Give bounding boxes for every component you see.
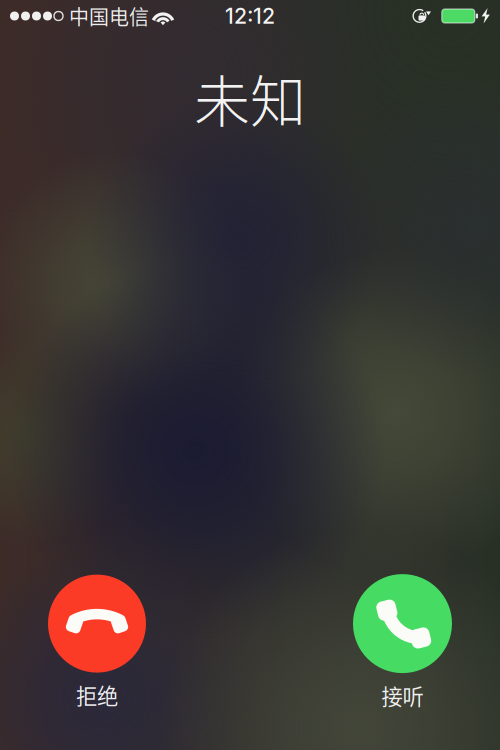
staticText: 未知 xyxy=(194,57,306,138)
button[interactable]: 接听 xyxy=(353,574,452,711)
staticText: 拒绝 xyxy=(76,680,118,710)
staticText: 12:12 xyxy=(225,3,275,29)
button[interactable]: 拒绝 xyxy=(48,575,146,710)
staticText: 接听 xyxy=(381,680,423,711)
staticText: 中国电信 xyxy=(69,1,149,30)
